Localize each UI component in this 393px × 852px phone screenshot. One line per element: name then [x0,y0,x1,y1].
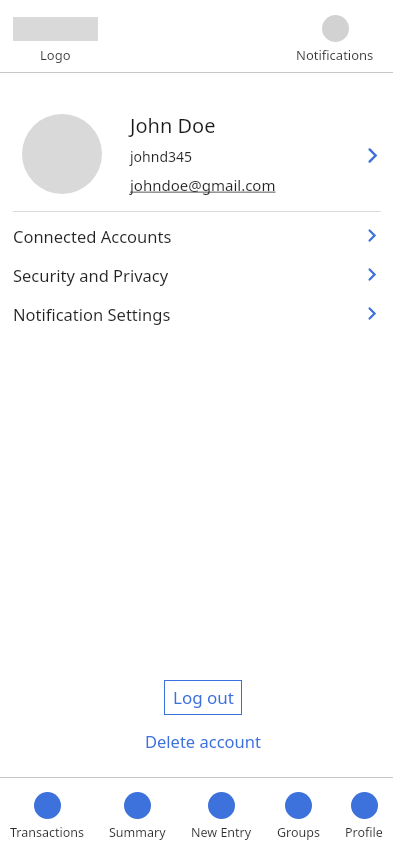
button[interactable]: Groups [277,792,320,841]
staticText: New Entry [191,824,252,841]
staticText: Transactions [10,824,84,841]
staticText: Log out [173,686,234,709]
button[interactable]: Summary [109,792,166,841]
staticText: Profile [345,824,383,841]
button[interactable]: John Doe [0,73,393,211]
staticText: Groups [277,824,320,841]
button[interactable]: Profile [345,792,383,841]
button[interactable]: Logo [13,17,98,64]
button[interactable]: Security and Privacy [0,255,393,294]
staticText: Notification Settings [13,303,171,325]
button[interactable]: Log out [164,680,242,715]
staticText: johnd345 [130,147,193,166]
staticText: Security and Privacy [13,264,169,286]
button[interactable]: New Entry [191,792,252,841]
staticText: Delete account [145,730,261,752]
staticText: Logo [40,46,71,64]
button[interactable]: Delete account [145,730,261,752]
button[interactable]: Connected Accounts [0,216,393,255]
staticText: Connected Accounts [13,225,172,247]
staticText: Summary [109,824,166,841]
button[interactable]: Transactions [10,792,84,841]
button[interactable]: Notification Settings [0,294,393,333]
staticText: johndoe@gmail.com [130,175,276,195]
staticText: Notifications [296,46,374,64]
staticText: John Doe [130,112,216,139]
button[interactable]: Notifications [296,15,374,64]
